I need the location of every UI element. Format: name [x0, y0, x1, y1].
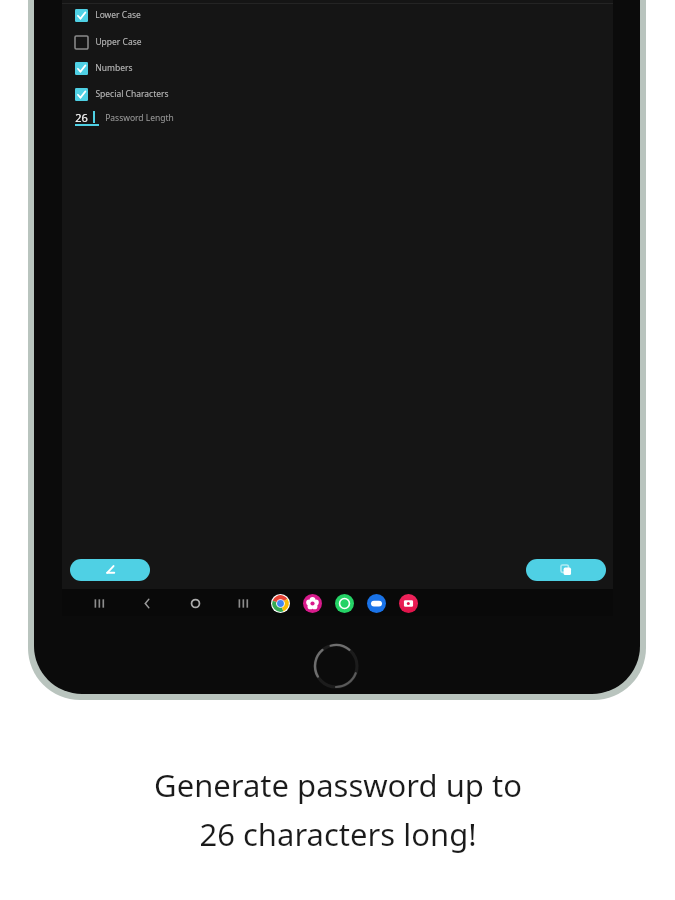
- staticText: Generate password up to: [154, 764, 522, 806]
- staticText: Password Length: [105, 112, 174, 124]
- staticText: Special Characters: [95, 88, 169, 100]
- button[interactable]: Lower Case: [75, 6, 141, 24]
- button[interactable]: Recent apps: [88, 592, 110, 614]
- button[interactable]: Copy password: [526, 559, 606, 581]
- staticText: Lower Case: [95, 9, 141, 21]
- staticText: 26: [75, 110, 88, 125]
- button[interactable]: Numbers: [75, 59, 133, 77]
- button[interactable]: Generate password: [70, 559, 150, 581]
- button[interactable]: 26: [75, 110, 174, 125]
- button[interactable]: Menu: [232, 592, 254, 614]
- button[interactable]: Home button: [313, 643, 359, 689]
- staticText: Upper Case: [95, 36, 142, 48]
- button[interactable]: Messages: [366, 593, 386, 613]
- button[interactable]: Special Characters: [75, 85, 169, 103]
- button[interactable]: WhatsApp: [334, 593, 354, 613]
- button[interactable]: Chrome: [270, 593, 290, 613]
- staticText: 26 characters long!: [199, 813, 477, 855]
- button[interactable]: Gallery: [302, 593, 322, 613]
- button[interactable]: Upper Case: [75, 33, 142, 51]
- button[interactable]: YouTube: [398, 593, 418, 613]
- button[interactable]: Home: [184, 592, 206, 614]
- button[interactable]: Back: [136, 592, 158, 614]
- staticText: Numbers: [95, 62, 133, 74]
